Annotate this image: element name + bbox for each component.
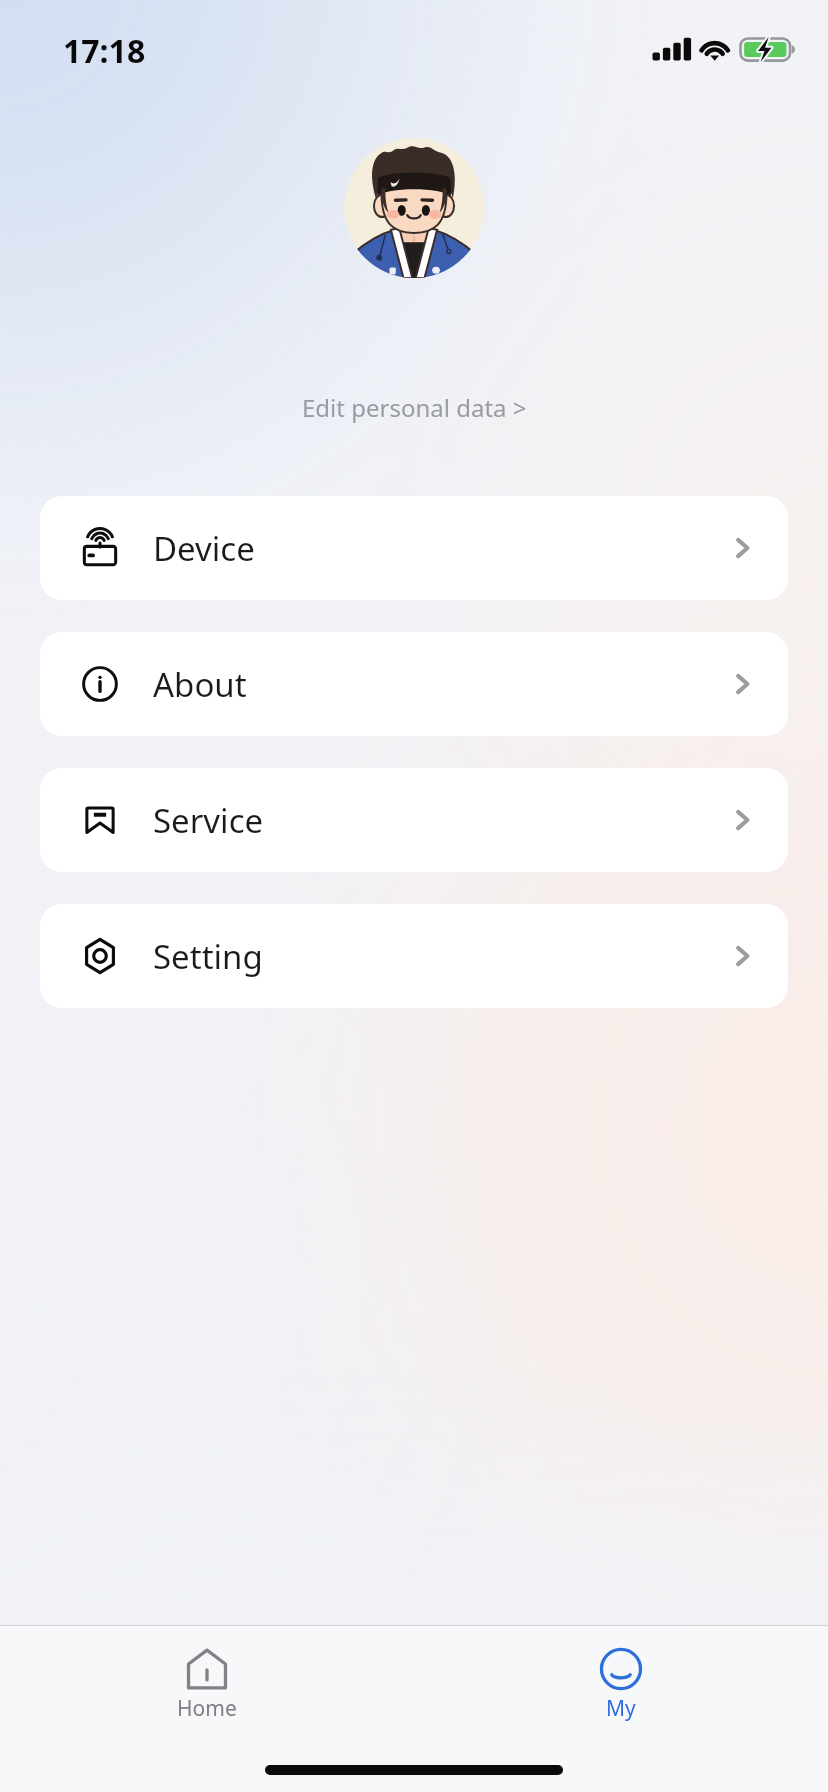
staticText: Home (177, 1694, 237, 1723)
button[interactable]: Device (40, 496, 788, 600)
button[interactable]: Setting (40, 904, 788, 1008)
button[interactable]: About (40, 632, 788, 736)
button[interactable]: Home (0, 1626, 414, 1738)
staticText: Setting (153, 934, 263, 979)
button[interactable]: Service (40, 768, 788, 872)
button[interactable]: My (414, 1626, 828, 1738)
staticText: Edit personal data > (302, 391, 527, 424)
staticText: 17:18 (63, 29, 146, 73)
button[interactable]: Edit personal data > (0, 384, 828, 430)
staticText: My (606, 1694, 636, 1723)
staticText: About (153, 662, 247, 707)
staticText: Device (153, 526, 255, 571)
button[interactable]: Profile avatar (344, 138, 484, 278)
staticText: Service (153, 798, 264, 843)
